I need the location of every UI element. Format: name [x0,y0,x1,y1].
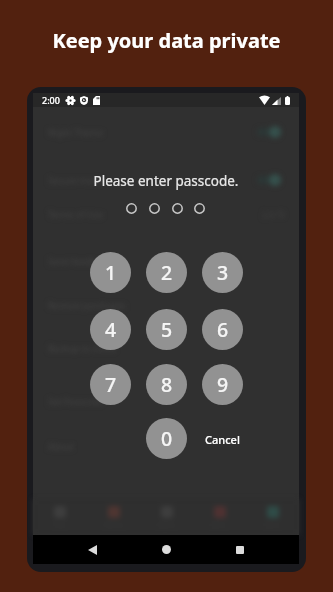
staticText: 3 [217,259,229,286]
staticText: 7 [105,371,117,398]
button[interactable]: 9 [202,364,243,405]
staticText: Please enter passcode. [33,172,299,190]
staticText: 1 [105,259,117,286]
button[interactable]: 8 [146,364,187,405]
staticText: 5 [161,316,173,343]
staticText: Backup to cloud [48,342,116,354]
button[interactable]: Cancel [197,429,247,449]
staticText: 6 [217,316,229,343]
button[interactable]: Restore purchases [33,291,299,319]
button[interactable]: 5 [146,309,187,350]
button[interactable]: Secure mode [33,166,299,194]
button[interactable]: Photos [87,499,140,535]
button[interactable]: Backup to cloud [33,334,299,362]
button[interactable]: Set Passcode [33,387,299,415]
button[interactable]: About [33,432,299,460]
button[interactable]: Terms of Use [33,200,299,228]
button[interactable]: Home [129,535,203,564]
button[interactable]: Send feedback [33,247,299,275]
staticText: Send feedback [48,255,110,267]
staticText: Set Passcode [48,395,104,407]
button[interactable]: 6 [202,309,243,350]
button[interactable]: 0 [146,418,187,459]
button[interactable]: 7 [90,364,131,405]
staticText: 9 [217,371,229,398]
staticText: 4 [105,316,117,343]
staticText: 8 [161,371,173,398]
button[interactable]: 2 [146,252,187,293]
button[interactable]: More [246,499,299,535]
button[interactable]: 1 [90,252,131,293]
button[interactable]: Music [193,499,246,535]
staticText: Restore purchases [48,299,126,311]
staticText: 2:00 [42,94,60,106]
button[interactable]: Recent apps [203,535,277,564]
button[interactable]: 3 [202,252,243,293]
button[interactable]: 4 [90,309,131,350]
staticText: 2 [161,259,173,286]
staticText: Secure mode [48,174,104,186]
staticText: Cancel [205,432,240,447]
staticText: Keep your data private [0,27,333,54]
button[interactable]: Back [55,535,129,564]
staticText: 0 [161,425,173,452]
